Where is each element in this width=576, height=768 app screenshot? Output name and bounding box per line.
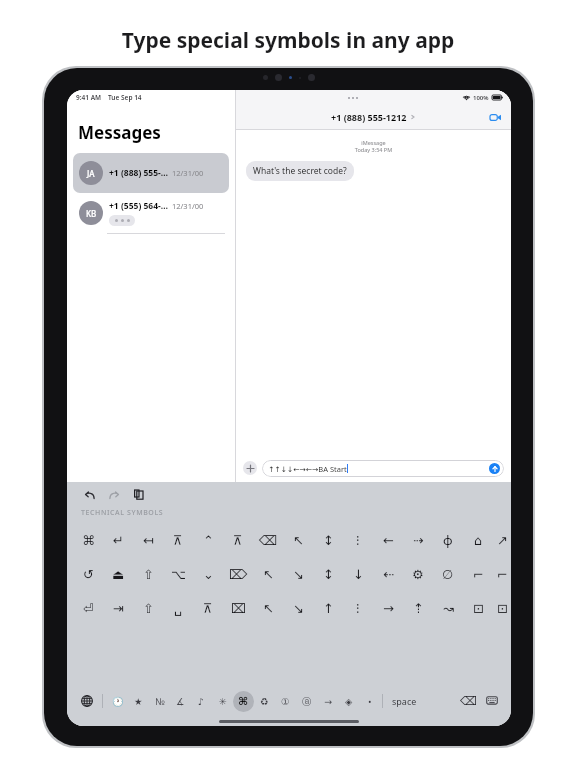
button[interactable]: ⇧ bbox=[133, 592, 163, 624]
button[interactable]: ◈ bbox=[338, 691, 359, 712]
staticText: ⁝ bbox=[356, 531, 360, 549]
button[interactable]: ↝ bbox=[433, 592, 463, 624]
button[interactable]: ⇡ bbox=[403, 592, 433, 624]
button[interactable]: ⌂ bbox=[463, 524, 493, 556]
button[interactable]: ⇧ bbox=[133, 558, 163, 590]
button[interactable]: ⏎ bbox=[73, 592, 103, 624]
staticText: ① bbox=[281, 696, 290, 707]
button[interactable]: ⚙ bbox=[403, 558, 433, 590]
button[interactable]: Redo bbox=[106, 487, 122, 503]
button[interactable]: ↑↑↓↓←→←→BA Start bbox=[262, 460, 504, 477]
staticText: ↑↑↓↓←→←→BA Start bbox=[268, 464, 347, 474]
button[interactable]: → bbox=[317, 691, 338, 712]
staticText: Tue Sep 14 bbox=[108, 93, 142, 102]
staticText: 12/31/00 bbox=[172, 168, 204, 178]
button[interactable]: ↕ bbox=[313, 524, 343, 556]
button[interactable]: ↖ bbox=[253, 592, 283, 624]
button[interactable]: ← bbox=[373, 524, 403, 556]
staticText: ⇢ bbox=[413, 533, 424, 548]
staticText: ♻ bbox=[260, 696, 269, 707]
button[interactable]: ✳ bbox=[212, 691, 233, 712]
button[interactable]: ★ bbox=[128, 691, 149, 712]
button[interactable]: ⁝ bbox=[343, 524, 373, 556]
button[interactable]: ⌫ bbox=[253, 524, 283, 556]
button[interactable]: ⊡ bbox=[463, 592, 493, 624]
button[interactable]: ↘ bbox=[283, 558, 313, 590]
staticText: Type special symbols in any app bbox=[0, 26, 576, 55]
button[interactable]: Dismiss keyboard bbox=[483, 692, 501, 710]
button[interactable]: ⌄ bbox=[193, 558, 223, 590]
button[interactable]: Delete bbox=[459, 692, 477, 710]
button[interactable]: № bbox=[149, 691, 170, 712]
staticText: ⊼ bbox=[203, 601, 213, 616]
button[interactable]: ↖ bbox=[283, 524, 313, 556]
button[interactable]: ⌘ bbox=[233, 691, 254, 712]
button[interactable]: ↵ bbox=[103, 524, 133, 556]
button[interactable]: ⌐ bbox=[463, 558, 493, 590]
button[interactable]: ↕ bbox=[313, 558, 343, 590]
button[interactable]: ♪ bbox=[191, 691, 212, 712]
staticText: ↤ bbox=[143, 533, 154, 548]
button[interactable]: ⁝ bbox=[343, 592, 373, 624]
button[interactable]: ⏏ bbox=[103, 558, 133, 590]
button[interactable]: FaceTime video call bbox=[487, 109, 503, 125]
staticText: ↝ bbox=[443, 601, 454, 616]
staticText: ↘ bbox=[293, 567, 304, 582]
button[interactable]: Undo bbox=[81, 487, 97, 503]
button[interactable]: ␣ bbox=[163, 592, 193, 624]
button[interactable]: ↓ bbox=[343, 558, 373, 590]
button[interactable]: ⊼ bbox=[223, 524, 253, 556]
button[interactable]: space bbox=[388, 695, 421, 707]
button[interactable]: ⊼ bbox=[193, 592, 223, 624]
staticText: № bbox=[155, 695, 165, 708]
staticText: ⌐ bbox=[473, 567, 484, 582]
button[interactable]: ⇥ bbox=[103, 592, 133, 624]
button[interactable]: ∡ bbox=[170, 691, 191, 712]
button[interactable]: ♻ bbox=[254, 691, 275, 712]
button[interactable]: ⇠ bbox=[373, 558, 403, 590]
button[interactable]: KB bbox=[73, 193, 229, 233]
button[interactable]: → bbox=[373, 592, 403, 624]
button[interactable]: ф bbox=[433, 524, 463, 556]
button[interactable]: • bbox=[359, 691, 380, 712]
button[interactable]: ↑ bbox=[313, 592, 343, 624]
staticText: ← bbox=[383, 533, 394, 548]
staticText: 🕐 bbox=[112, 696, 124, 707]
button[interactable]: Send bbox=[489, 463, 500, 474]
button[interactable]: ⊼ bbox=[163, 524, 193, 556]
button[interactable]: ↗ bbox=[493, 524, 511, 556]
button[interactable]: Add attachment bbox=[243, 461, 257, 475]
staticText: ∡ bbox=[176, 696, 185, 707]
staticText: ↕ bbox=[323, 533, 334, 548]
staticText: 100% bbox=[473, 94, 489, 102]
staticText: ⇠ bbox=[383, 567, 394, 582]
button[interactable]: ↘ bbox=[283, 592, 313, 624]
button[interactable]: ↺ bbox=[73, 558, 103, 590]
button[interactable]: ⌦ bbox=[223, 558, 253, 590]
staticText: ⌄ bbox=[203, 567, 214, 582]
button[interactable]: ① bbox=[275, 691, 296, 712]
button[interactable]: Paste bbox=[131, 487, 147, 503]
staticText: ◈ bbox=[345, 696, 353, 707]
staticText: ⊡ bbox=[473, 601, 484, 616]
staticText: ⌘ bbox=[238, 695, 249, 708]
staticText: ♪ bbox=[198, 696, 205, 707]
button[interactable]: Change keyboard bbox=[77, 691, 97, 711]
button[interactable]: ⓐ bbox=[296, 691, 317, 712]
button[interactable]: ⌧ bbox=[223, 592, 253, 624]
button[interactable]: ↖ bbox=[253, 558, 283, 590]
staticText: space bbox=[392, 695, 417, 707]
button[interactable]: JA bbox=[73, 153, 229, 193]
button[interactable]: ⌘ bbox=[73, 524, 103, 556]
button[interactable]: ↤ bbox=[133, 524, 163, 556]
button[interactable]: 🕐 bbox=[107, 691, 128, 712]
button[interactable]: ⊡ bbox=[493, 592, 511, 624]
staticText: iMessage bbox=[236, 139, 511, 146]
button[interactable]: ∅ bbox=[433, 558, 463, 590]
button[interactable]: ⌃ bbox=[193, 524, 223, 556]
button[interactable]: ⌥ bbox=[163, 558, 193, 590]
button[interactable]: ⇢ bbox=[403, 524, 433, 556]
button[interactable]: ⌐ bbox=[493, 558, 511, 590]
staticText: +1 (888) 555-… bbox=[109, 167, 169, 179]
staticText: ↗ bbox=[497, 533, 508, 548]
